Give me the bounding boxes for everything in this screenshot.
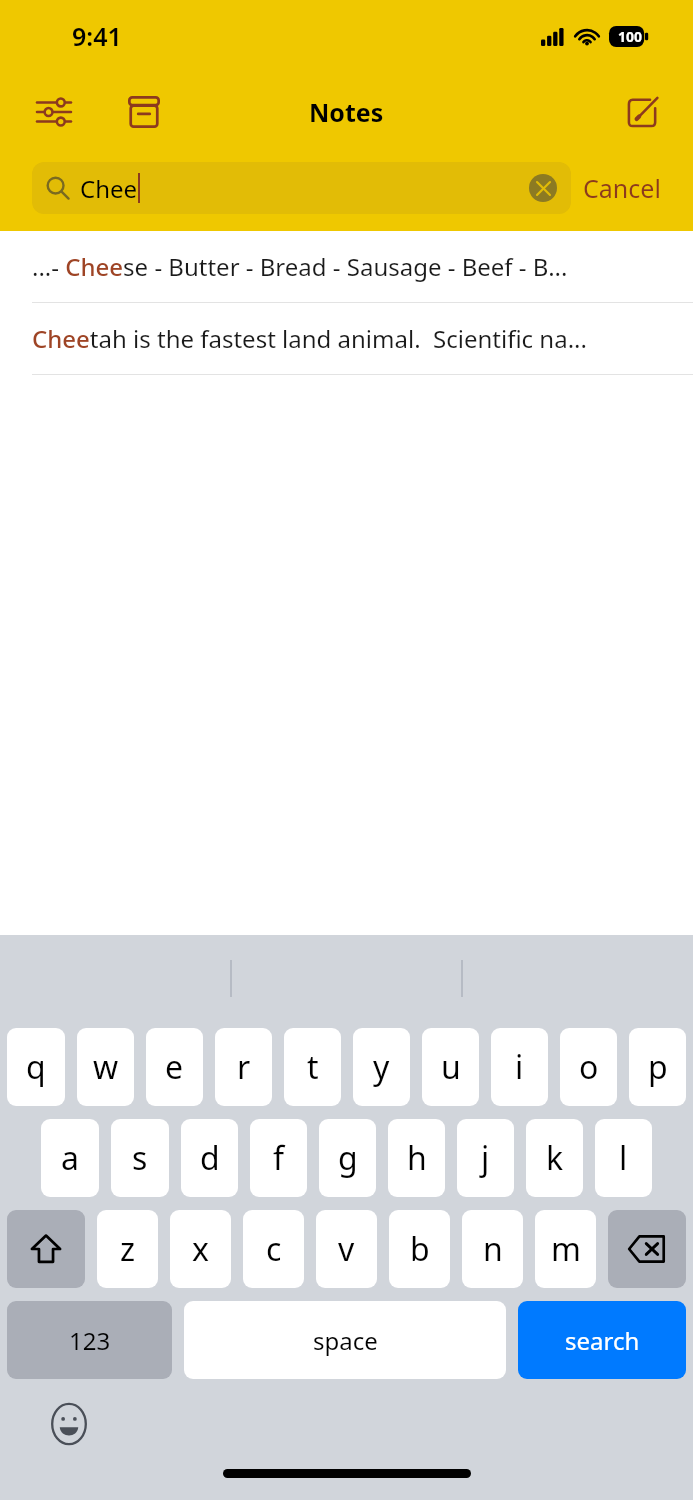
button[interactable]: r <box>215 1028 272 1106</box>
staticText: search <box>565 1324 640 1357</box>
button[interactable]: x <box>170 1210 231 1288</box>
button[interactable]: w <box>77 1028 134 1106</box>
staticText: Cheetah is the fastest land animal. Scie… <box>32 322 587 355</box>
button[interactable]: g <box>319 1119 376 1197</box>
staticText: w <box>93 1045 119 1089</box>
button[interactable]: m <box>535 1210 596 1288</box>
staticText: y <box>373 1045 390 1089</box>
button[interactable]: b <box>389 1210 450 1288</box>
button[interactable]: q <box>7 1028 65 1106</box>
button[interactable]: p <box>629 1028 686 1106</box>
staticText: Notes <box>309 95 384 129</box>
button[interactable]: 123 <box>7 1301 172 1379</box>
button[interactable]: ...- Cheese - Butter - Bread - Sausage -… <box>0 231 693 302</box>
button[interactable]: l <box>595 1119 652 1197</box>
staticText: g <box>338 1136 358 1180</box>
staticText: t <box>307 1045 319 1089</box>
button[interactable]: Clear text <box>529 174 557 202</box>
staticText: c <box>266 1227 282 1271</box>
staticText: u <box>441 1045 461 1089</box>
button[interactable]: n <box>462 1210 523 1288</box>
button[interactable]: c <box>243 1210 304 1288</box>
button[interactable]: Archive <box>118 86 170 138</box>
button[interactable]: y <box>353 1028 410 1106</box>
staticText: o <box>579 1045 599 1089</box>
staticText: e <box>165 1045 184 1089</box>
button[interactable]: d <box>181 1119 238 1197</box>
button[interactable]: j <box>457 1119 514 1197</box>
staticText: f <box>273 1136 285 1180</box>
button[interactable]: Cheetah is the fastest land animal. Scie… <box>0 303 693 374</box>
staticText: 123 <box>69 1324 111 1357</box>
button[interactable]: o <box>560 1028 617 1106</box>
staticText: Chee <box>80 172 138 205</box>
button[interactable]: Shift <box>7 1210 85 1288</box>
button[interactable]: u <box>422 1028 479 1106</box>
staticText: x <box>192 1227 209 1271</box>
staticText: m <box>551 1227 581 1271</box>
staticText: r <box>237 1045 251 1089</box>
staticText: l <box>619 1136 628 1180</box>
button[interactable]: Chee <box>32 162 571 214</box>
staticText: p <box>648 1045 668 1089</box>
button[interactable]: e <box>146 1028 203 1106</box>
button[interactable]: space <box>184 1301 506 1379</box>
button[interactable]: z <box>97 1210 158 1288</box>
staticText: j <box>481 1136 490 1180</box>
staticText: 100 <box>618 27 643 46</box>
staticText: b <box>410 1227 430 1271</box>
staticText: z <box>120 1227 136 1271</box>
button[interactable]: t <box>284 1028 341 1106</box>
button[interactable]: New note <box>617 86 669 138</box>
button[interactable]: k <box>526 1119 583 1197</box>
staticText: d <box>200 1136 220 1180</box>
button[interactable]: Emoji keyboard <box>44 1399 94 1449</box>
button[interactable]: i <box>491 1028 548 1106</box>
button[interactable]: Backspace <box>608 1210 686 1288</box>
button[interactable]: View options <box>28 86 80 138</box>
button[interactable]: search <box>518 1301 686 1379</box>
button[interactable]: Cancel <box>571 163 673 213</box>
staticText: n <box>483 1227 503 1271</box>
button[interactable]: v <box>316 1210 377 1288</box>
staticText: a <box>61 1136 79 1180</box>
staticText: s <box>132 1136 148 1180</box>
button[interactable]: h <box>388 1119 445 1197</box>
staticText: v <box>338 1227 355 1271</box>
staticText: h <box>407 1136 427 1180</box>
button[interactable]: a <box>41 1119 99 1197</box>
staticText: Cancel <box>583 171 661 205</box>
staticText: ...- Cheese - Butter - Bread - Sausage -… <box>32 250 568 283</box>
staticText: k <box>546 1136 564 1180</box>
button[interactable]: s <box>111 1119 169 1197</box>
staticText: i <box>515 1045 524 1089</box>
staticText: q <box>26 1045 46 1089</box>
staticText: 9:41 <box>72 19 122 53</box>
button[interactable]: f <box>250 1119 307 1197</box>
staticText: space <box>313 1324 378 1357</box>
